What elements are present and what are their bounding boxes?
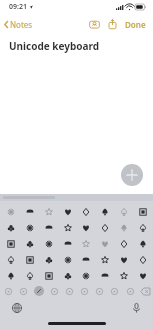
button[interactable]: Symbol — [77, 268, 94, 283]
button[interactable]: Symbol — [134, 236, 151, 251]
button[interactable]: Share — [106, 16, 119, 32]
button[interactable]: Symbol — [96, 204, 113, 219]
button[interactable]: Symbol — [59, 204, 76, 219]
button[interactable]: Symbol — [115, 220, 132, 235]
button[interactable]: Symbol — [40, 252, 57, 267]
button[interactable]: Dictate — [129, 301, 143, 315]
button[interactable]: Symbol — [2, 236, 19, 251]
button[interactable]: Collaborate — [87, 16, 102, 32]
button[interactable]: Symbol — [59, 252, 76, 267]
button[interactable]: Symbol — [40, 236, 57, 251]
button[interactable]: Category — [92, 284, 106, 298]
button[interactable]: Symbol — [59, 220, 76, 235]
button[interactable]: Symbol — [134, 204, 151, 219]
button[interactable]: Symbol — [96, 268, 113, 283]
button[interactable]: Delete — [138, 284, 152, 298]
button[interactable]: Symbol — [2, 268, 19, 283]
button[interactable]: Symbol — [59, 268, 76, 283]
button[interactable]: Symbol — [77, 220, 94, 235]
staticText: Done — [125, 19, 146, 30]
button[interactable]: Symbol — [40, 268, 57, 283]
button[interactable]: Symbol — [59, 236, 76, 251]
button[interactable]: Symbol — [96, 252, 113, 267]
button[interactable]: Category — [47, 284, 61, 298]
staticText: Unicode keyboard — [9, 39, 100, 53]
button[interactable]: Symbol — [77, 236, 94, 251]
button[interactable]: Symbol — [40, 220, 57, 235]
button[interactable]: Category — [107, 284, 121, 298]
button[interactable]: Symbol — [21, 252, 38, 267]
button[interactable]: Category — [123, 284, 137, 298]
button[interactable]: Symbol — [21, 204, 38, 219]
button[interactable]: Symbol — [96, 236, 113, 251]
button[interactable]: Symbol — [134, 252, 151, 267]
button[interactable]: Symbol — [40, 204, 57, 219]
button[interactable]: Switch keyboard — [10, 301, 24, 315]
button[interactable]: Symbol — [2, 204, 19, 219]
button[interactable]: Category — [1, 284, 15, 298]
button[interactable]: Symbol — [77, 252, 94, 267]
button[interactable]: Symbol — [2, 220, 19, 235]
staticText: Notes — [10, 19, 33, 30]
button[interactable]: Category — [32, 284, 46, 298]
button[interactable]: Symbol — [21, 236, 38, 251]
button[interactable]: Category — [62, 284, 76, 298]
button[interactable]: Notes — [4, 19, 33, 30]
button[interactable]: Symbol — [96, 220, 113, 235]
button[interactable]: Symbol — [115, 268, 132, 283]
button[interactable]: Symbol — [115, 252, 132, 267]
button[interactable]: Symbol — [21, 268, 38, 283]
button[interactable]: Symbol — [115, 204, 132, 219]
button[interactable]: Done — [123, 19, 148, 30]
button[interactable]: Symbol — [134, 268, 151, 283]
button[interactable]: Category — [77, 284, 91, 298]
button[interactable]: Symbol — [21, 220, 38, 235]
staticText: 09:21 — [9, 2, 27, 12]
button[interactable]: Symbol — [115, 236, 132, 251]
button[interactable]: Symbol — [2, 252, 19, 267]
button[interactable]: Category — [16, 284, 30, 298]
button[interactable]: Symbol — [77, 204, 94, 219]
button[interactable]: Symbol — [134, 220, 151, 235]
button[interactable]: Add — [121, 164, 143, 186]
